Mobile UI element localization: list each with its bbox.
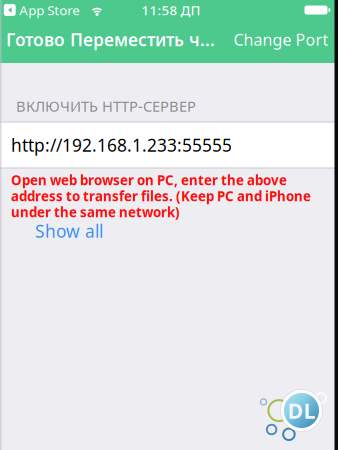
staticText: Open web browser on PC, enter the above xyxy=(11,171,287,189)
staticText: ВКЛЮЧИТЬ HTTP-СЕРВЕР xyxy=(16,96,196,116)
staticText: address to transfer files. (Keep PC and … xyxy=(11,187,311,205)
staticText: Change Port xyxy=(233,29,328,50)
staticText: http://192.168.1.233:55555 xyxy=(11,133,232,156)
staticText: Show all xyxy=(35,219,103,242)
staticText: Готово Переместить ч... xyxy=(6,28,215,51)
staticText: DL xyxy=(287,396,315,425)
button[interactable]: Show all xyxy=(30,216,108,245)
staticText: under the same network) xyxy=(11,203,180,221)
staticText: 11:58 ДП xyxy=(141,1,200,19)
button[interactable]: Change Port xyxy=(229,22,332,57)
button[interactable]: Downloads xyxy=(279,388,323,432)
staticText: App Store xyxy=(19,1,80,19)
button[interactable]: App Store xyxy=(1,1,83,19)
